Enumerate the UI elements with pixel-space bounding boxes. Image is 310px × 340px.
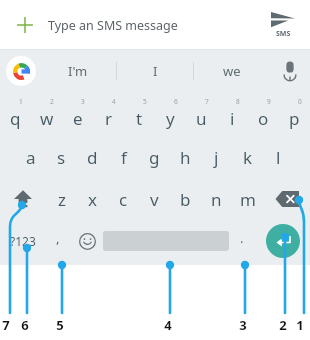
button[interactable]: I'm [40,50,116,92]
staticText: 6 [174,97,178,106]
button[interactable]: 5 [124,94,155,136]
button[interactable]: h [170,136,201,178]
button[interactable]: Shift [0,178,46,220]
staticText: x [88,188,97,211]
button[interactable]: 6 [155,94,186,136]
button[interactable]: 1 [0,94,31,136]
staticText: 0 [298,97,302,106]
staticText: 3 [239,316,247,334]
staticText: we [223,62,241,80]
staticText: v [150,188,159,211]
button[interactable]: m [232,178,263,220]
staticText: l [276,146,281,169]
staticText: 5 [56,316,64,334]
button[interactable]: Comma [45,220,71,262]
button[interactable]: we [194,50,270,92]
staticText: 3 [81,97,85,106]
staticText: g [149,146,160,169]
button[interactable]: k [232,136,263,178]
staticText: z [58,188,66,211]
staticText: 7 [205,97,209,106]
button[interactable]: ?123 [0,220,45,262]
button[interactable]: n [201,178,232,220]
button[interactable]: 0 [279,94,310,136]
button[interactable]: 7 [186,94,217,136]
button[interactable]: 8 [217,94,248,136]
staticText: 5 [143,97,147,106]
staticText: i [230,107,235,130]
button[interactable]: Period [229,220,255,262]
staticText: y [166,107,175,130]
button[interactable]: g [139,136,170,178]
button[interactable]: Add attachment [10,10,40,40]
staticText: SMS [276,29,291,39]
staticText: t [136,107,143,130]
staticText: Type an SMS message [48,17,178,34]
staticText: 8 [236,97,240,106]
button[interactable]: l [263,136,294,178]
button[interactable]: a [15,136,46,178]
button[interactable]: v [139,178,170,220]
staticText: 9 [267,97,271,106]
button[interactable]: c [108,178,139,220]
staticText: s [57,146,66,169]
staticText: r [105,107,113,130]
staticText: q [10,107,21,130]
staticText: a [26,146,36,169]
staticText: I'm [68,62,88,80]
staticText: o [258,107,269,130]
button[interactable]: f [108,136,139,178]
staticText: e [73,107,83,130]
staticText: j [214,146,219,169]
button[interactable]: d [77,136,108,178]
staticText: n [211,188,222,211]
staticText: k [243,146,253,169]
button[interactable]: 3 [62,94,93,136]
button[interactable]: 2 [31,94,62,136]
button[interactable]: Voice input [270,50,310,92]
button[interactable]: Emoji [71,220,103,262]
staticText: I [153,62,158,80]
staticText: 4 [112,97,116,106]
staticText: 4 [164,316,172,334]
staticText: f [121,146,127,169]
staticText: 6 [21,316,29,334]
staticText: m [240,188,256,211]
staticText: 1 [19,97,23,106]
button[interactable]: 9 [248,94,279,136]
button[interactable]: j [201,136,232,178]
button[interactable]: Google [6,56,36,86]
button[interactable]: b [170,178,201,220]
staticText: w [40,107,54,130]
staticText: . [240,229,244,247]
button[interactable]: s [46,136,77,178]
staticText: c [119,188,128,211]
button[interactable]: z [46,178,77,220]
staticText: ?123 [10,233,36,249]
staticText: 2 [50,97,54,106]
staticText: 7 [2,316,10,334]
staticText: u [196,107,207,130]
button[interactable]: x [77,178,108,220]
button[interactable]: I [117,50,193,92]
staticText: 1 [296,316,304,334]
staticText: d [87,146,98,169]
button[interactable]: Send SMS [266,0,300,50]
staticText: p [289,107,300,130]
button[interactable]: Backspace [263,178,310,220]
staticText: h [180,146,191,169]
button[interactable]: 4 [93,94,124,136]
button[interactable]: Enter [266,224,300,258]
staticText: , [56,229,60,247]
staticText: 2 [279,316,287,334]
staticText: b [180,188,191,211]
